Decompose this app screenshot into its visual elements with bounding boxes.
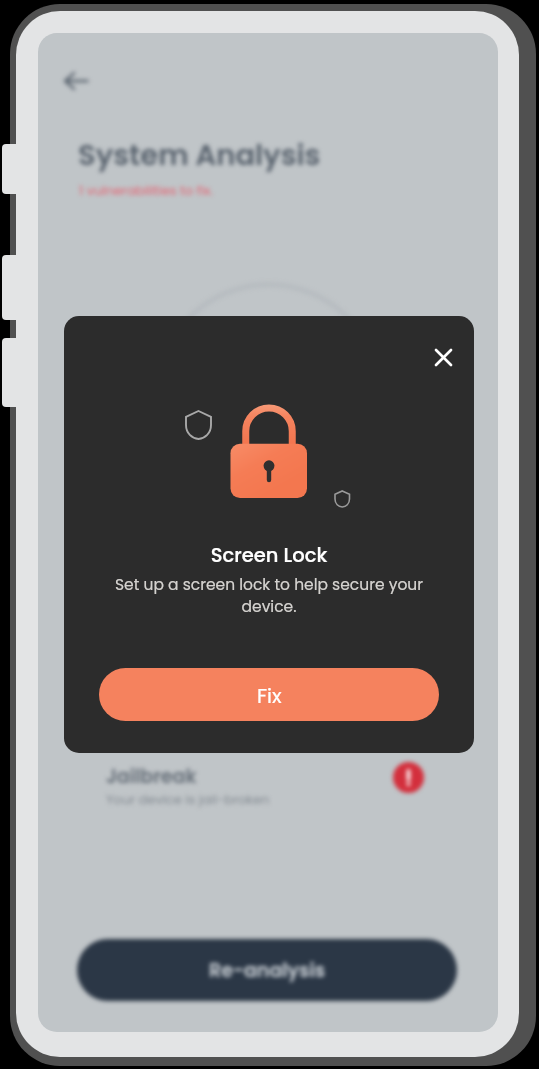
staticText: Re-analysis (209, 957, 326, 984)
button[interactable]: Back (52, 57, 100, 105)
staticText: Your device is jail-broken (106, 790, 270, 808)
staticText: System Analysis (78, 135, 321, 176)
staticText: 1 vulnerabilities to fix. (79, 181, 214, 199)
button[interactable]: Close (423, 337, 464, 378)
staticText: Set up a screen lock to help secure your… (101, 574, 437, 618)
staticText: Jailbreak (106, 763, 197, 790)
button[interactable]: Fix (99, 668, 439, 721)
button[interactable]: Warning (393, 762, 424, 793)
button[interactable]: Re-analysis (77, 939, 457, 1001)
staticText: Fix (257, 682, 282, 710)
staticText: Screen Lock (64, 542, 474, 569)
